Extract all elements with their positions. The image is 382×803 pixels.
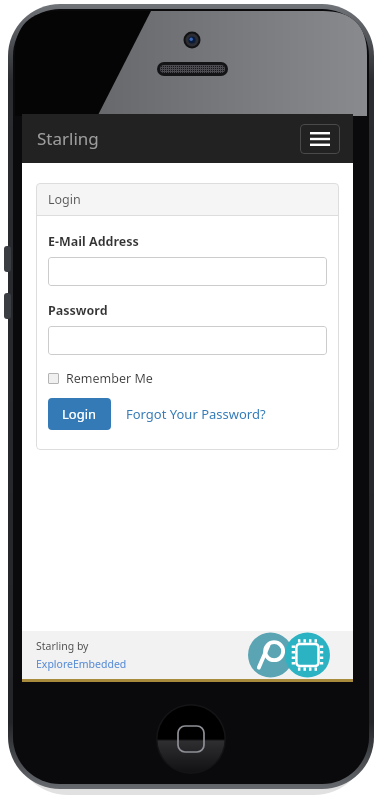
staticText: Login	[48, 191, 81, 208]
staticText: Starling by	[36, 639, 89, 653]
button[interactable]	[48, 326, 327, 355]
staticText: Forgot Your Password?	[126, 405, 266, 423]
button[interactable]: Forgot Your Password?	[124, 399, 268, 429]
button[interactable]: ExploreEmbedded	[36, 657, 127, 671]
staticText: Password	[48, 302, 108, 319]
button[interactable]: Login	[48, 398, 111, 430]
staticText: Remember Me	[66, 370, 153, 387]
button[interactable]: Remember Me	[48, 370, 153, 387]
button[interactable]	[48, 257, 327, 286]
button[interactable]: Toggle navigation menu	[300, 124, 340, 154]
staticText: Login	[62, 405, 97, 423]
button[interactable]: ExploreEmbedded logo	[247, 632, 331, 678]
button[interactable]: Starling	[37, 127, 99, 150]
staticText: E-Mail Address	[48, 233, 139, 250]
